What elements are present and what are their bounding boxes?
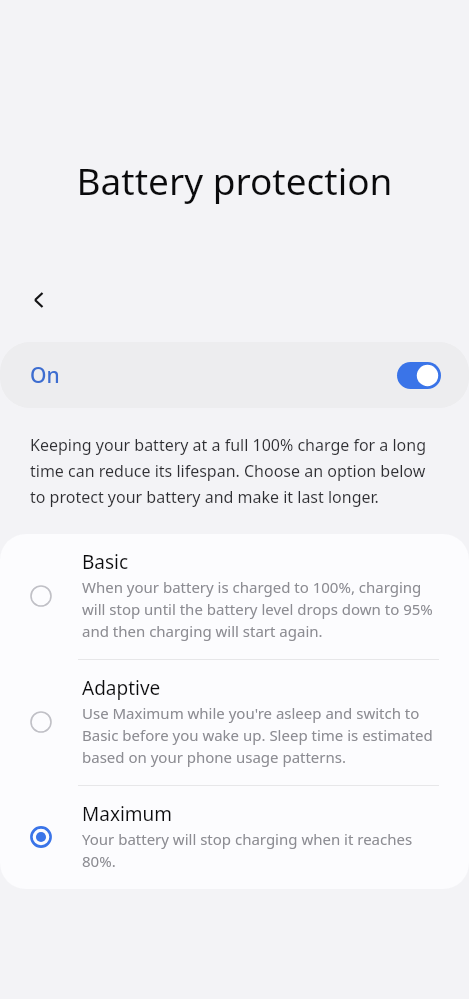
button[interactable]: Basic bbox=[0, 534, 469, 659]
staticText: On bbox=[30, 361, 60, 390]
button[interactable]: Adaptive bbox=[0, 660, 469, 785]
staticText: Adaptive bbox=[82, 675, 161, 701]
staticText: Use Maximum while you're asleep and swit… bbox=[82, 703, 439, 768]
staticText: Maximum bbox=[82, 801, 173, 827]
button[interactable]: On bbox=[0, 342, 469, 408]
staticText: Battery protection bbox=[0, 155, 469, 205]
button[interactable]: Back bbox=[14, 275, 64, 325]
staticText: Keeping your battery at a full 100% char… bbox=[30, 434, 439, 508]
staticText: Your battery will stop charging when it … bbox=[82, 829, 439, 872]
staticText: When your battery is charged to 100%, ch… bbox=[82, 577, 439, 642]
button[interactable]: Maximum bbox=[0, 786, 469, 889]
staticText: Basic bbox=[82, 549, 129, 575]
